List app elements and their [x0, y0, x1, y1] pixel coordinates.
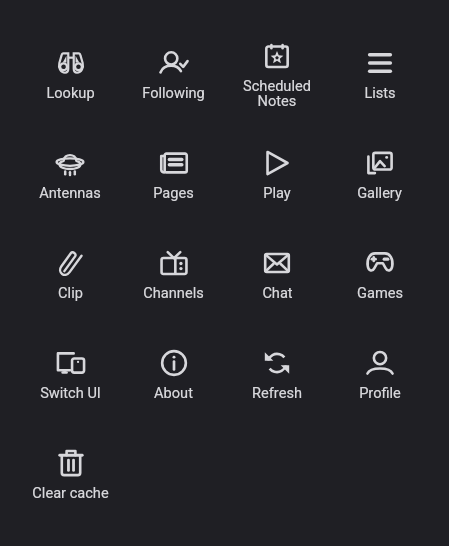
- staticText: Chat: [262, 284, 293, 301]
- staticText: Play: [263, 184, 291, 201]
- button[interactable]: Lists: [328, 24, 431, 124]
- staticText: Pages: [153, 184, 194, 201]
- button[interactable]: Lookup: [18, 24, 122, 124]
- staticText: Scheduled Notes: [243, 77, 311, 109]
- staticText: About: [154, 384, 193, 401]
- button[interactable]: About: [122, 324, 225, 424]
- staticText: Refresh: [252, 384, 302, 401]
- staticText: Switch UI: [40, 384, 101, 401]
- button[interactable]: Refresh: [225, 324, 328, 424]
- button[interactable]: Chat: [225, 224, 328, 324]
- staticText: Gallery: [357, 184, 402, 201]
- button[interactable]: Channels: [122, 224, 225, 324]
- button[interactable]: Profile: [328, 324, 431, 424]
- staticText: Antennas: [39, 184, 101, 201]
- staticText: Clip: [58, 284, 83, 301]
- staticText: Clear cache: [32, 484, 109, 501]
- button[interactable]: Scheduled Notes: [225, 24, 328, 124]
- staticText: Lists: [364, 84, 396, 101]
- staticText: Games: [357, 284, 403, 301]
- button[interactable]: Antennas: [18, 124, 122, 224]
- button[interactable]: Games: [328, 224, 431, 324]
- button[interactable]: Switch UI: [18, 324, 122, 424]
- button[interactable]: Clear cache: [18, 424, 122, 524]
- button[interactable]: Following: [122, 24, 225, 124]
- button[interactable]: Play: [225, 124, 328, 224]
- staticText: Channels: [143, 284, 204, 301]
- staticText: Following: [142, 84, 205, 101]
- button[interactable]: Pages: [122, 124, 225, 224]
- button[interactable]: Gallery: [328, 124, 431, 224]
- staticText: Lookup: [46, 84, 95, 101]
- button[interactable]: Clip: [18, 224, 122, 324]
- staticText: Profile: [359, 384, 401, 401]
